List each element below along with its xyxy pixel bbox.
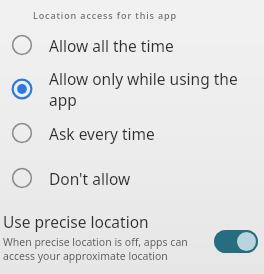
staticText: When precise location is off, apps can a… xyxy=(3,235,188,263)
staticText: Ask every time xyxy=(49,123,155,144)
button[interactable]: Don't allow xyxy=(0,156,264,200)
button[interactable]: Use precise location toggle xyxy=(214,230,258,253)
button[interactable]: Ask every time xyxy=(0,111,264,155)
button[interactable]: Allow only while using the app xyxy=(0,67,264,111)
staticText: Use precise location xyxy=(3,211,149,232)
staticText: Don't allow xyxy=(49,168,131,189)
staticText: Location access for this app xyxy=(33,9,178,21)
staticText: Allow only while using the app xyxy=(49,68,264,110)
button[interactable]: Use precise location xyxy=(0,205,264,274)
button[interactable]: Allow all the time xyxy=(0,23,264,67)
staticText: Allow all the time xyxy=(49,35,174,56)
